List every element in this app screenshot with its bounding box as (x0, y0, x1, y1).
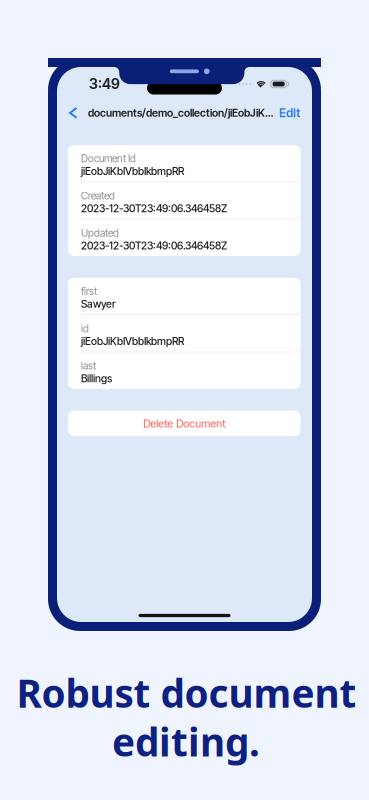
staticText: jiEobJiKbIVbbIkbmpRR (81, 165, 184, 177)
button[interactable]: Delete Document (68, 411, 300, 436)
staticText: documents/demo_collection/jiEobJiK… (88, 106, 273, 119)
button[interactable]: documents/demo_collection/jiEobJiK… (57, 100, 273, 126)
staticText: Updated (81, 227, 119, 239)
staticText: 2023-12-30T23:49:06.346458Z (81, 202, 227, 215)
staticText: jiEobJiKbIVbbIkbmpRR (81, 335, 184, 347)
staticText: Billings (81, 372, 112, 385)
staticText: 2023-12-30T23:49:06.346458Z (81, 239, 227, 252)
staticText: Created (81, 190, 115, 202)
staticText: editing. (112, 716, 260, 767)
staticText: Edit (279, 106, 300, 120)
staticText: Sawyer (81, 298, 116, 310)
staticText: Delete Document (143, 417, 225, 430)
staticText: last (81, 360, 96, 372)
staticText: first (81, 285, 97, 298)
staticText: 3:49 (89, 75, 120, 92)
staticText: Document Id (81, 152, 136, 165)
staticText: id (81, 322, 89, 335)
staticText: Robust document (16, 667, 356, 718)
button[interactable]: Edit (279, 100, 312, 126)
